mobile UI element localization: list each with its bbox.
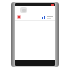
other: Notification badge: [17, 15, 21, 19]
button[interactable]: [15, 6, 55, 14]
button[interactable]: Chart: [42, 15, 46, 19]
button[interactable]: Notification badge: [15, 14, 55, 20]
button[interactable]: Bottom navigation: [15, 60, 55, 66]
